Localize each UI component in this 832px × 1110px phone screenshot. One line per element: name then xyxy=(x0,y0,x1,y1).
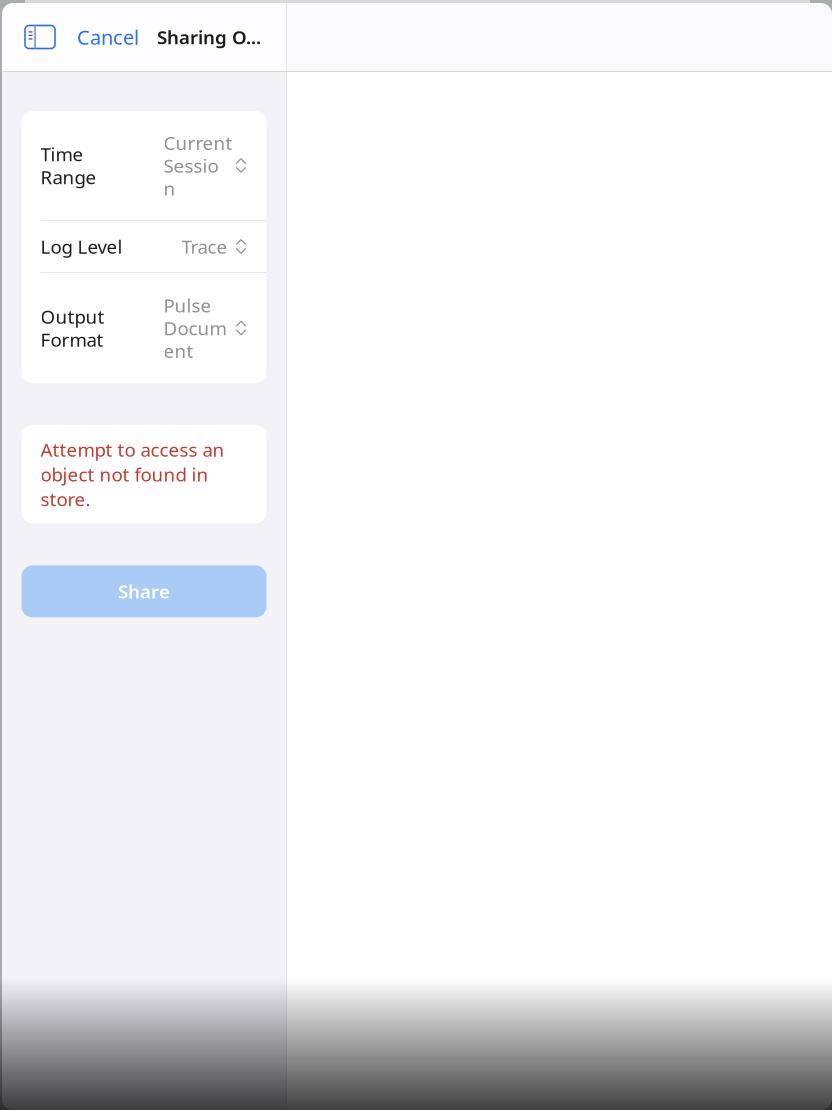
staticText: Attempt to access an object not found in… xyxy=(40,437,224,511)
staticText: Share xyxy=(118,579,170,604)
staticText: Pulse Docum ent xyxy=(163,293,226,363)
staticText: Sharing O... xyxy=(157,25,261,49)
staticText: Log Level xyxy=(40,234,122,259)
button[interactable]: Share xyxy=(21,565,266,617)
staticText: Time Range xyxy=(40,142,96,189)
button[interactable]: Cancel xyxy=(73,3,143,71)
button[interactable]: Time Range xyxy=(21,111,266,220)
staticText: Current Sessio n xyxy=(163,130,232,201)
staticText: Cancel xyxy=(77,24,139,50)
button[interactable]: Toggle Sidebar xyxy=(2,3,73,71)
staticText: Trace xyxy=(181,234,227,259)
button[interactable]: Output Format xyxy=(21,273,266,383)
button[interactable]: Log Level xyxy=(21,221,266,272)
staticText: Output Format xyxy=(40,304,104,352)
